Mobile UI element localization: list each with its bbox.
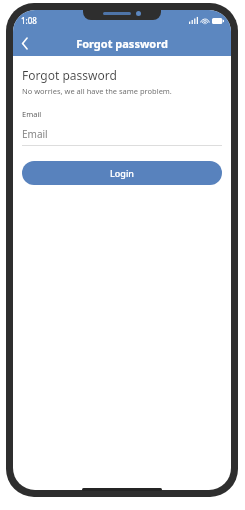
staticText: 1:08	[21, 15, 37, 26]
staticText: Forgot password	[22, 67, 117, 83]
staticText: Email	[22, 109, 42, 119]
staticText: Login	[110, 167, 134, 179]
button[interactable]: Back	[13, 31, 37, 55]
button[interactable]: Email	[22, 127, 222, 141]
staticText: Forgot password	[76, 36, 168, 51]
staticText: No worries, we all have the same problem…	[22, 86, 172, 96]
button[interactable]: Login	[22, 161, 222, 185]
staticText: Email	[22, 127, 48, 141]
